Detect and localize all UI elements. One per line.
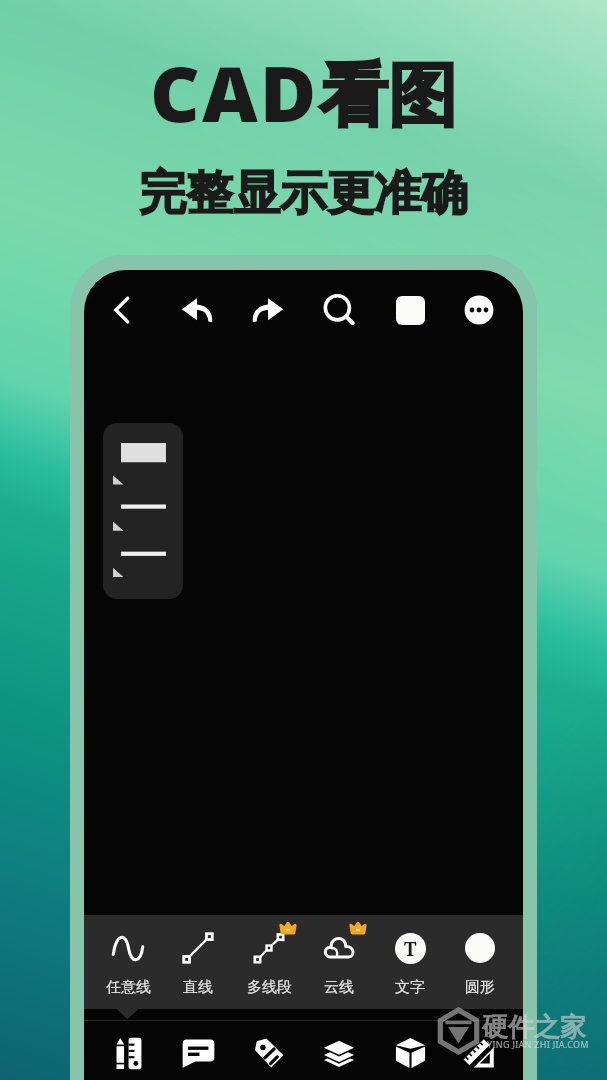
button[interactable]: Layers panel [103,423,183,599]
button[interactable]: 圆形 [445,915,515,1009]
button[interactable]: Undo [172,285,222,335]
button[interactable]: 云线 [304,915,374,1009]
button[interactable]: 多线段 [234,915,304,1009]
staticText: CAD [150,40,319,145]
button[interactable]: Back [97,285,147,335]
button[interactable]: T [375,915,445,1009]
staticText: 硬件之家 [482,1011,586,1044]
button[interactable]: 3D view [375,1021,445,1080]
staticText: 任意线 [106,978,151,997]
button[interactable]: Layers [304,1021,374,1080]
staticText: 完整显示更准确 [0,164,607,223]
staticText: 文字 [395,978,425,997]
button[interactable]: Stop [385,285,435,335]
button[interactable]: Redo [243,285,293,335]
button[interactable]: 任意线 [93,915,163,1009]
staticText: 云线 [324,978,354,997]
button[interactable]: Comment [163,1021,233,1080]
button[interactable]: Ruler [445,1021,515,1080]
staticText: 圆形 [465,978,495,997]
button[interactable]: Search [314,285,364,335]
button[interactable]: Measure [93,1021,163,1080]
button[interactable]: Tag [234,1021,304,1080]
staticText: 直线 [183,978,213,997]
button[interactable]: 直线 [163,915,233,1009]
staticText: T [404,936,417,962]
staticText: YING JIAN ZHI JIA.COM [487,1038,589,1050]
button[interactable]: More [454,285,504,335]
staticText: 多线段 [247,978,292,997]
staticText: 看图 [319,53,457,140]
